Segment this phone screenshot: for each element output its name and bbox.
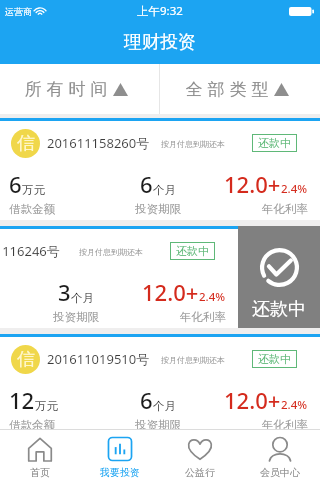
staticText: 12.0+ bbox=[142, 277, 199, 307]
staticText: 我要投资 bbox=[100, 466, 140, 479]
staticText: 按月付息到期还本 bbox=[161, 139, 225, 149]
staticText: 6 bbox=[140, 169, 153, 199]
staticText: 理财投资 bbox=[124, 31, 196, 54]
button[interactable]: 首页 bbox=[0, 430, 80, 480]
staticText: 还款中 bbox=[258, 136, 291, 150]
staticText: 201611158260号 bbox=[47, 134, 150, 152]
staticText: 会员中心 bbox=[260, 466, 300, 479]
staticText: 12.0+ bbox=[224, 385, 281, 415]
button[interactable]: 全部类型 bbox=[160, 64, 320, 114]
staticText: 6 bbox=[140, 385, 153, 415]
staticText: 信 bbox=[17, 348, 35, 371]
staticText: 投资期限 bbox=[108, 418, 208, 432]
staticText: 20161116246号 bbox=[0, 242, 60, 260]
button[interactable]: 信 bbox=[0, 334, 320, 429]
button[interactable]: 还款中 bbox=[252, 134, 297, 152]
staticText: 12.0+ bbox=[224, 169, 281, 199]
staticText: 个月 bbox=[153, 183, 176, 197]
staticText: 万元 bbox=[22, 183, 45, 197]
staticText: 2.4% bbox=[199, 289, 226, 305]
staticText: 还款中 bbox=[176, 244, 209, 258]
staticText: 所有时间 bbox=[22, 79, 110, 100]
button[interactable]: 还款中 bbox=[238, 226, 320, 328]
staticText: 12 bbox=[9, 385, 35, 415]
staticText: 运营商 bbox=[5, 6, 32, 17]
staticText: 个月 bbox=[153, 399, 176, 413]
staticText: 6 bbox=[9, 169, 22, 199]
staticText: 2.4% bbox=[281, 397, 308, 413]
staticText: 投资期限 bbox=[26, 310, 126, 324]
button[interactable]: 我要投资 bbox=[80, 430, 160, 480]
button[interactable]: 公益行 bbox=[160, 430, 240, 480]
staticText: 按月付息到期还本 bbox=[161, 355, 225, 365]
staticText: 借款金额 bbox=[9, 202, 108, 216]
staticText: 万元 bbox=[35, 399, 58, 413]
staticText: 信 bbox=[17, 132, 35, 155]
staticText: 3 bbox=[58, 277, 71, 307]
staticText: 上午9:32 bbox=[137, 3, 183, 19]
staticText: 年化利率 bbox=[208, 202, 308, 216]
staticText: 2.4% bbox=[281, 181, 308, 197]
staticText: 借款余额 bbox=[9, 418, 108, 432]
staticText: 年化利率 bbox=[208, 418, 308, 432]
staticText: 首页 bbox=[30, 466, 50, 479]
staticText: 还款中 bbox=[258, 352, 291, 366]
staticText: 个月 bbox=[71, 291, 94, 305]
staticText: 全部类型 bbox=[183, 79, 271, 100]
staticText: 按月付息到期还本 bbox=[79, 247, 143, 257]
staticText: 年化利率 bbox=[126, 310, 226, 324]
staticText: 公益行 bbox=[185, 466, 215, 479]
button[interactable]: 还款中 bbox=[170, 242, 215, 260]
staticText: 201611019510号 bbox=[47, 350, 150, 368]
button[interactable]: 所有时间 bbox=[0, 64, 159, 114]
button[interactable]: 还款中 bbox=[252, 350, 297, 368]
button[interactable]: 会员中心 bbox=[240, 430, 320, 480]
staticText: 投资期限 bbox=[108, 202, 208, 216]
button[interactable]: 信 bbox=[0, 118, 320, 220]
staticText: 还款中 bbox=[252, 298, 306, 321]
